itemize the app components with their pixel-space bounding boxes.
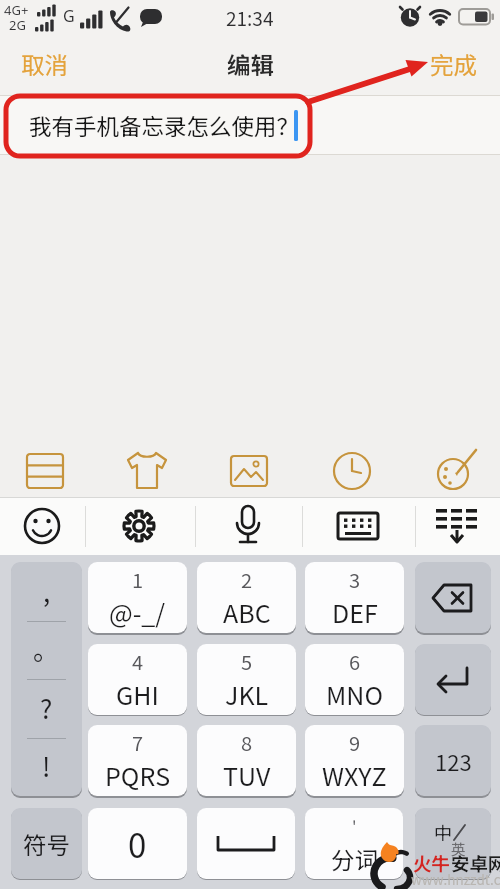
staticText: 完成 [430,47,477,81]
button[interactable] [197,808,295,879]
button[interactable] [425,441,485,501]
staticText: 5 [241,647,253,676]
staticText: G [63,5,75,27]
staticText: 中 [434,819,452,845]
staticText: 火牛 [413,850,451,877]
button[interactable]: ' [305,808,403,879]
staticText: 英 [451,838,467,860]
button[interactable] [415,562,491,633]
staticText: ! [42,747,51,785]
button[interactable] [219,441,279,501]
staticText: PQRS [105,757,171,793]
button[interactable]: 0 [88,808,187,879]
staticText: 8 [241,728,253,757]
staticText: , [43,572,51,610]
button[interactable]: 完成 [421,47,485,81]
staticText: 7 [132,728,144,757]
staticText: 9 [349,728,361,757]
staticText: 4G+ [4,1,29,19]
button[interactable]: 2 [197,562,296,633]
staticText: 2G [9,16,26,34]
button[interactable] [221,499,275,553]
staticText: 我有手机备忘录怎么使用？ [29,109,300,142]
button[interactable]: 6 [305,644,404,715]
button[interactable]: 9 [305,725,404,796]
staticText: 取消 [21,47,68,81]
staticText: 3 [349,565,361,594]
button[interactable]: 4 [88,644,187,715]
staticText: www.hnzzdt.com [411,869,500,889]
button[interactable]: 5 [197,644,296,715]
button[interactable]: 123 [415,725,491,796]
button[interactable]: 7 [88,725,187,796]
button[interactable]: 8 [197,725,296,796]
button[interactable]: 符号 [11,808,82,879]
staticText: MNO [326,676,383,712]
button[interactable] [15,499,69,553]
staticText: @-_/ [109,594,166,630]
staticText: 21:34 [226,4,274,30]
button[interactable]: 取消 [18,47,70,81]
button[interactable] [15,441,75,501]
staticText: 0 [128,820,147,868]
button[interactable] [322,441,382,501]
button[interactable] [430,499,484,553]
button[interactable] [331,499,385,553]
staticText: DEF [332,594,378,630]
staticText: WXYZ [322,757,387,793]
button[interactable] [415,644,491,715]
button[interactable]: , [11,562,82,796]
button[interactable] [117,441,177,501]
button[interactable] [0,96,500,154]
button[interactable]: 中 [415,808,491,879]
staticText: GHI [116,676,159,712]
staticText: JKL [225,676,269,712]
staticText: TUV [223,757,271,793]
staticText: 123 [435,745,472,777]
button[interactable]: 1 [88,562,187,633]
staticText: 安卓网 [451,850,500,877]
staticText: ABC [223,594,271,630]
staticText: 。 [33,630,60,668]
staticText: 1 [132,565,144,594]
staticText: 分词 [331,842,378,876]
staticText: 4 [132,647,144,676]
staticText: 2 [241,565,253,594]
staticText: ' [352,814,357,830]
button[interactable]: 3 [305,562,404,633]
staticText: 符号 [23,827,70,861]
button[interactable] [112,499,166,553]
staticText: 编辑 [227,47,274,81]
staticText: ? [40,689,53,727]
staticText: 6 [349,647,361,676]
